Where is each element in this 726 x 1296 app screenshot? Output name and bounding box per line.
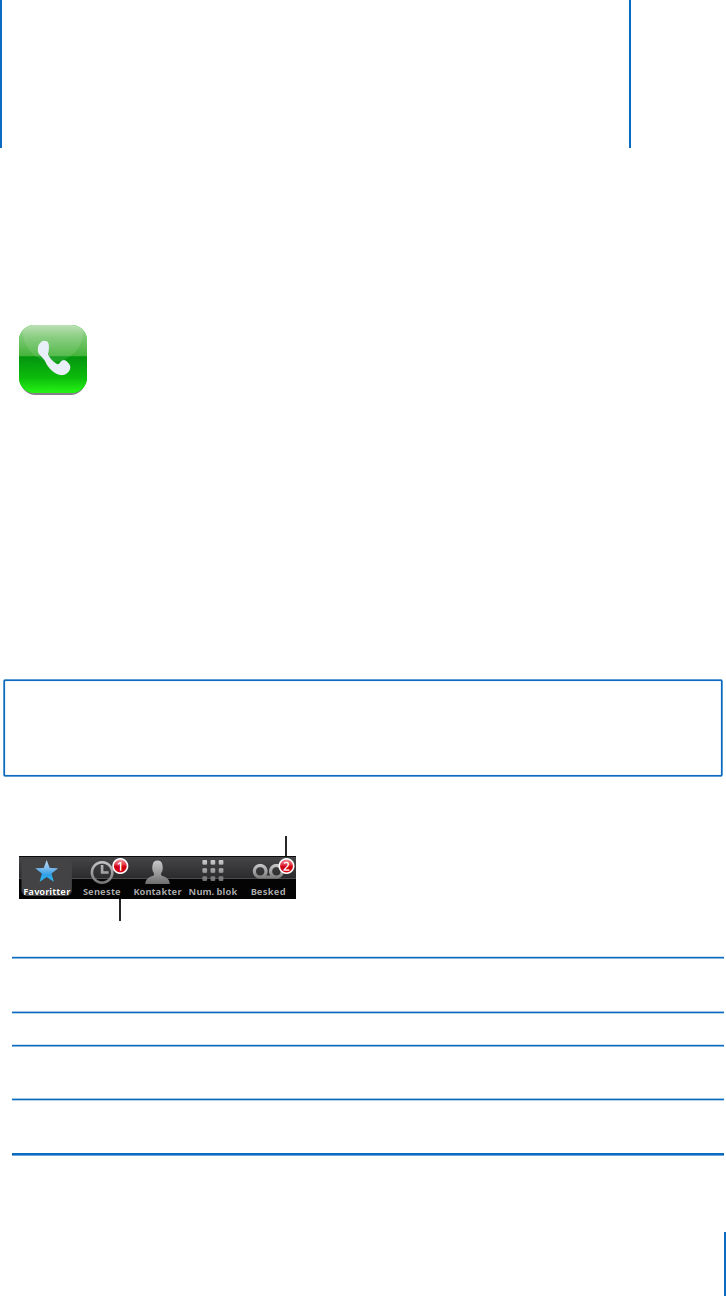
staticText: Seneste [83, 885, 121, 897]
button[interactable]: Num. blok [185, 856, 241, 899]
staticText: Kontakter [133, 885, 181, 897]
button[interactable]: Besked [241, 856, 296, 899]
staticText: 1 [117, 858, 124, 874]
staticText: 2 [283, 858, 290, 874]
staticText: Besked [251, 885, 286, 897]
button[interactable]: Favoritter [19, 856, 74, 899]
staticText: Favoritter [23, 885, 70, 897]
staticText: Num. blok [188, 885, 237, 897]
button[interactable]: Kontakter [130, 856, 185, 899]
button[interactable]: Seneste [74, 856, 130, 899]
